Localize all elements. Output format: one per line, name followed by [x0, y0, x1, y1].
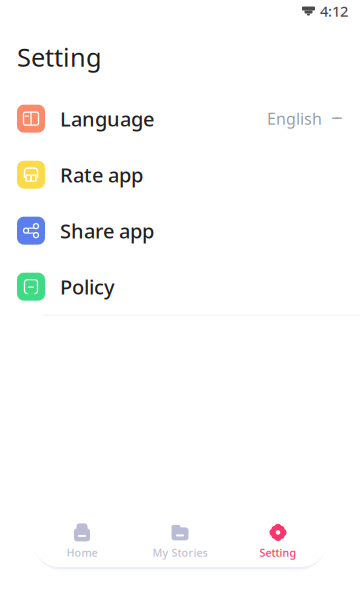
staticText: English	[267, 108, 322, 129]
staticText: Language	[60, 105, 154, 132]
staticText: My Stories	[152, 545, 207, 560]
button[interactable]: Language	[0, 91, 360, 147]
button[interactable]: Share app	[0, 203, 360, 259]
staticText: Setting	[259, 545, 296, 560]
button[interactable]: Home	[33, 515, 131, 567]
button[interactable]: Setting	[229, 515, 327, 567]
staticText: Rate app	[60, 161, 143, 188]
staticText: Share app	[60, 217, 154, 244]
button[interactable]: Rate app	[0, 147, 360, 203]
staticText: 4:12	[320, 1, 348, 21]
staticText: Setting	[17, 40, 102, 74]
staticText: Home	[66, 545, 97, 560]
button[interactable]: My Stories	[131, 515, 229, 567]
button[interactable]: Policy	[0, 259, 360, 315]
staticText: Policy	[60, 273, 115, 300]
